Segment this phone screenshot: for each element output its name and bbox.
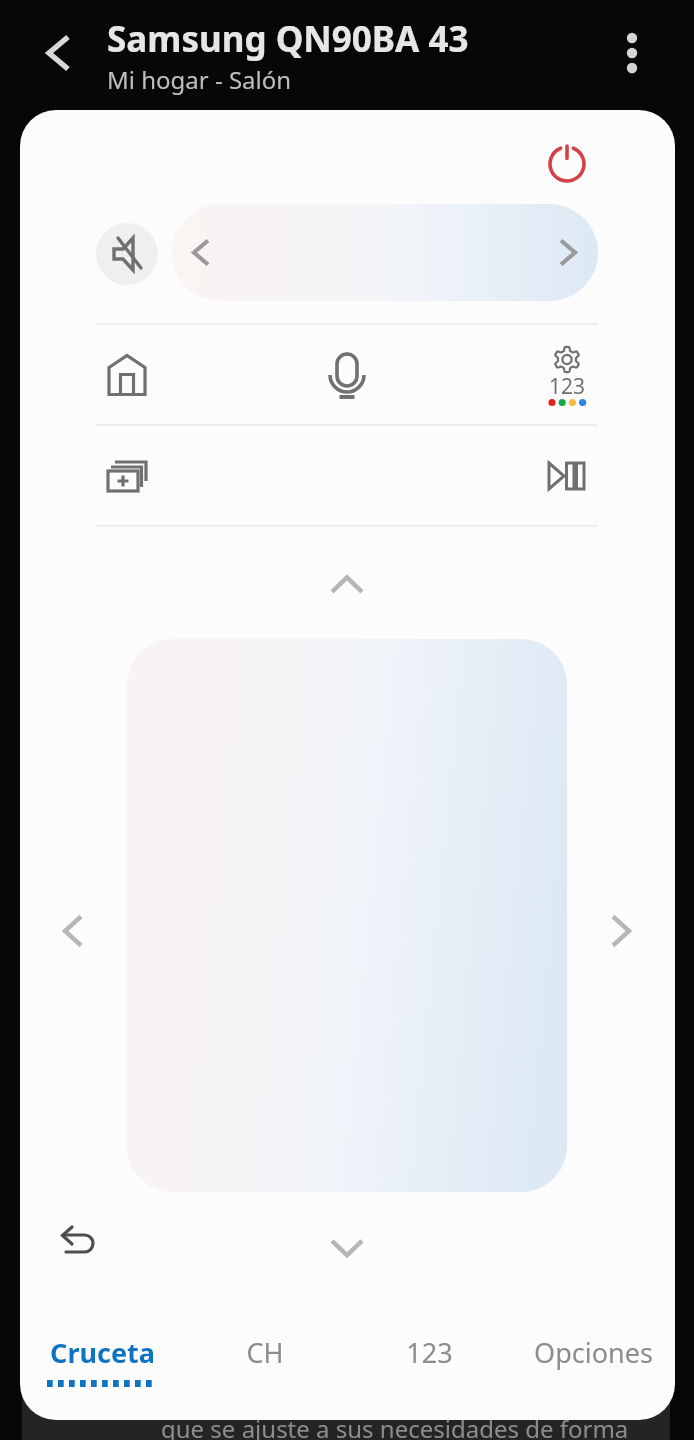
staticText: 123 (549, 372, 586, 401)
button[interactable]: Down (297, 1213, 397, 1283)
button[interactable]: 123 (347, 1334, 511, 1406)
button[interactable]: Keypad settings (517, 336, 617, 412)
button[interactable]: Volume down (172, 204, 282, 301)
button[interactable]: Home (77, 335, 177, 415)
button[interactable]: Voice (297, 335, 397, 415)
button[interactable]: Play pause (516, 436, 616, 516)
button[interactable]: More options (602, 23, 662, 83)
button[interactable]: Right (586, 896, 656, 966)
staticText: Samsung QN90BA 43 (107, 15, 469, 63)
button[interactable]: CH (183, 1334, 347, 1406)
button[interactable]: Return (43, 1209, 113, 1278)
button[interactable]: Touchpad (127, 639, 567, 1192)
staticText: que se ajuste a sus necesidades de forma (161, 1412, 629, 1440)
button[interactable]: Left (38, 896, 108, 966)
button[interactable]: Power (527, 124, 607, 204)
staticText: Opciones (534, 1334, 653, 1371)
button[interactable]: Opciones (511, 1334, 675, 1406)
staticText: CH (246, 1334, 284, 1371)
button[interactable]: Volume up (488, 204, 598, 301)
button[interactable]: Up (297, 550, 397, 620)
button[interactable]: Cruceta (20, 1334, 183, 1406)
staticText: Mi hogar - Salón (107, 63, 292, 96)
staticText: 123 (406, 1334, 453, 1371)
button[interactable]: Add source (73, 441, 173, 521)
button[interactable]: Mute (96, 223, 158, 285)
staticText: Cruceta (50, 1334, 155, 1371)
button[interactable]: Back (25, 20, 89, 84)
